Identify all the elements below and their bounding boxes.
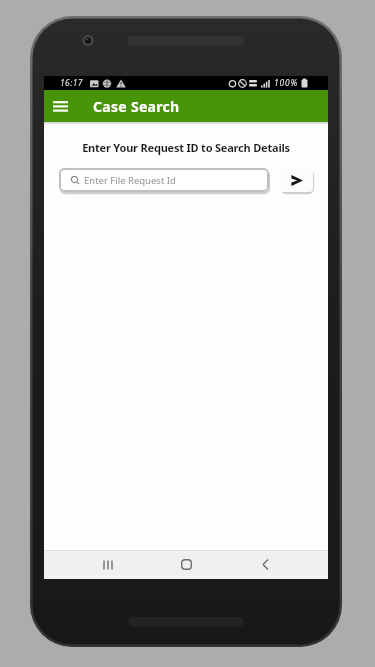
button[interactable]: [93, 550, 123, 579]
button[interactable]: [280, 168, 313, 192]
staticText: 16:17: [60, 77, 83, 89]
button[interactable]: [171, 550, 201, 579]
staticText: Enter Your Request ID to Search Details: [44, 140, 328, 155]
staticText: 100%: [274, 77, 299, 89]
button[interactable]: Enter File Request Id: [59, 168, 269, 192]
staticText: Enter File Request Id: [84, 174, 176, 187]
staticText: Case Search: [93, 97, 180, 116]
button[interactable]: [44, 90, 76, 122]
button[interactable]: [250, 550, 280, 579]
